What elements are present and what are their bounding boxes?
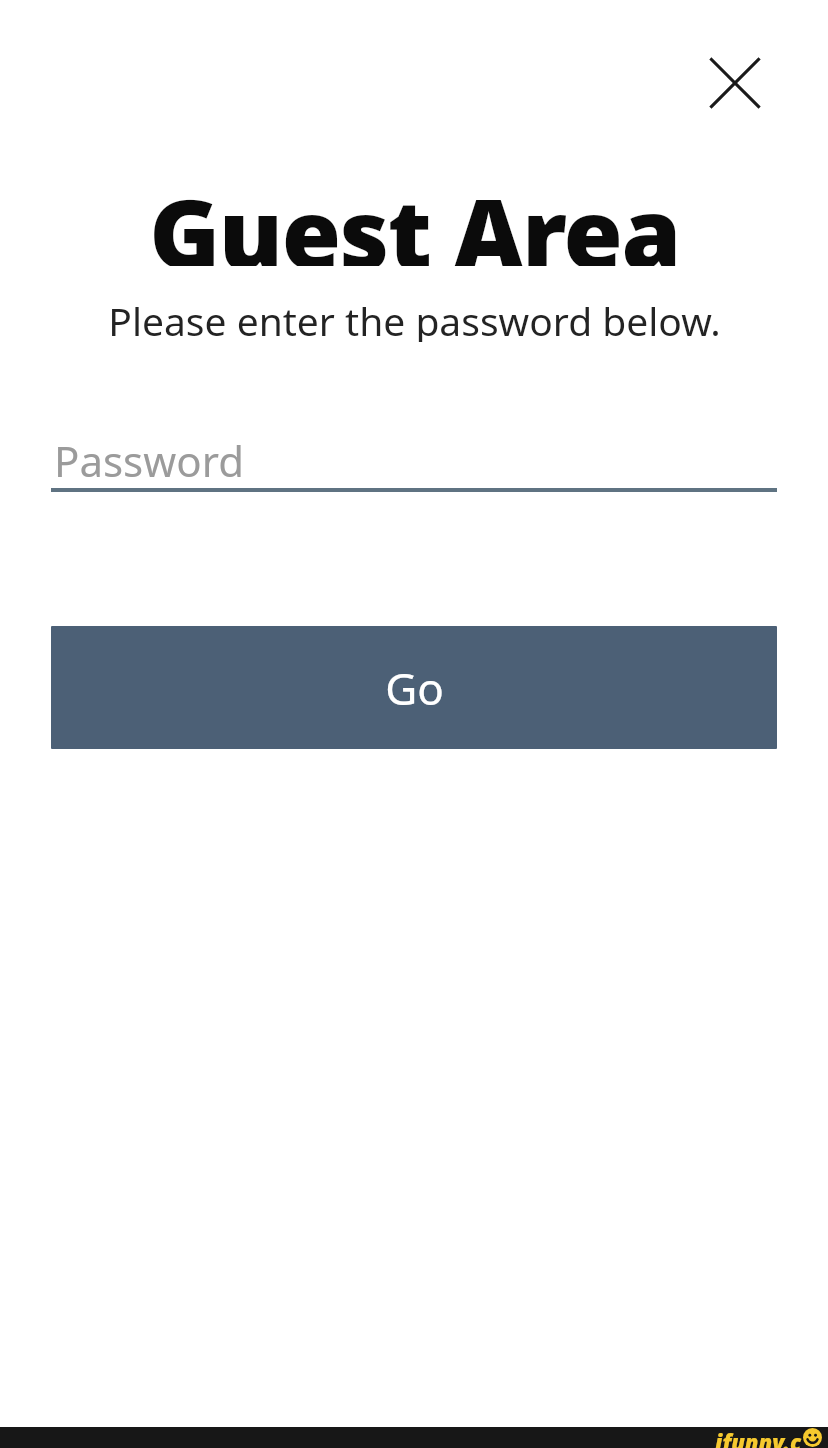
- staticText: Please enter the password below.: [108, 294, 721, 342]
- staticText: Guest Area: [149, 166, 680, 266]
- staticText: Go: [385, 658, 444, 718]
- staticText: Password: [54, 432, 244, 489]
- button[interactable]: Close: [688, 36, 782, 130]
- button[interactable]: Password: [51, 428, 777, 492]
- button[interactable]: Go: [51, 626, 777, 749]
- staticText: ifunny.c: [715, 1427, 802, 1448]
